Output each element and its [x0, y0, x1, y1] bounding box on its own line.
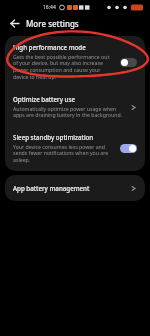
- button[interactable]: Back: [6, 15, 22, 31]
- staticText: 16:44: [43, 4, 56, 11]
- staticText: Automatically optimize power usage when …: [13, 105, 124, 119]
- staticText: Gets the best possible performance out o…: [13, 53, 114, 81]
- staticText: High performance mode: [13, 43, 86, 51]
- button[interactable]: High performance mode: [120, 58, 137, 67]
- button[interactable]: Sleep standby optimization: [120, 144, 137, 153]
- staticText: Optimize battery use: [13, 95, 75, 103]
- button[interactable]: Optimize battery use: [5, 88, 145, 126]
- button[interactable]: High performance mode: [5, 36, 145, 88]
- staticText: App battery management: [13, 184, 130, 192]
- staticText: Your device consumes less power and send…: [13, 143, 114, 164]
- button[interactable]: App battery management: [5, 175, 145, 201]
- staticText: More settings: [26, 18, 79, 29]
- staticText: Sleep standby optimization: [13, 133, 94, 141]
- button[interactable]: Sleep standby optimization: [5, 126, 145, 171]
